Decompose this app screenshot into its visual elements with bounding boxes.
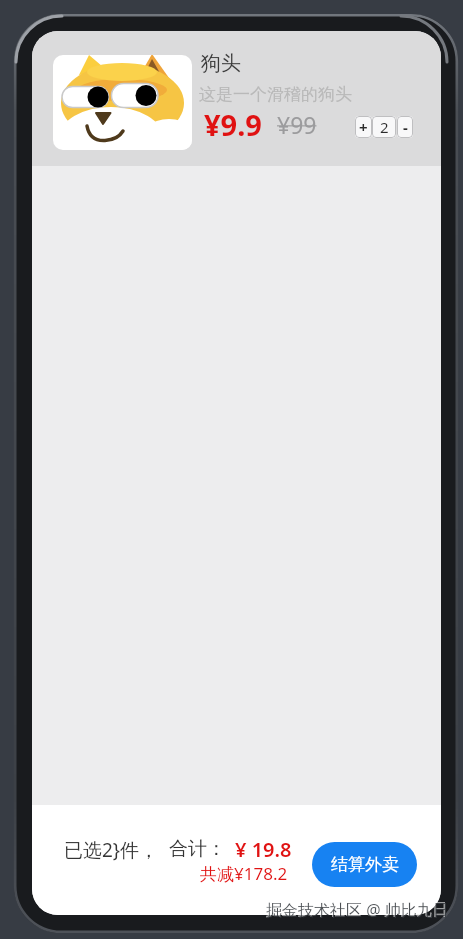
staticText: + xyxy=(359,117,368,137)
staticText: 狗头 xyxy=(201,51,241,76)
staticText: ¥9.9 xyxy=(204,105,262,144)
staticText: 掘金技术社区 @ 帅比九日 xyxy=(265,898,448,920)
button[interactable]: - xyxy=(397,116,413,138)
staticText: 已选2}件， xyxy=(64,837,159,863)
staticText: - xyxy=(403,117,408,137)
button[interactable]: 狗头 xyxy=(32,31,441,166)
staticText: 共减¥178.2 xyxy=(200,862,288,885)
staticText: 这是一个滑稽的狗头 xyxy=(199,84,352,105)
staticText: ¥ 19.8 xyxy=(235,836,292,863)
staticText: 结算外卖 xyxy=(331,854,399,875)
staticText: 合计： xyxy=(169,837,226,861)
staticText: ¥99 xyxy=(277,109,317,140)
button[interactable]: 结算外卖 xyxy=(312,842,417,887)
staticText: 2 xyxy=(380,117,389,137)
staticText: 掘金技术社区 @ 帅比九日 xyxy=(266,899,449,921)
button[interactable]: 2 xyxy=(372,116,396,138)
button[interactable]: + xyxy=(355,116,372,138)
